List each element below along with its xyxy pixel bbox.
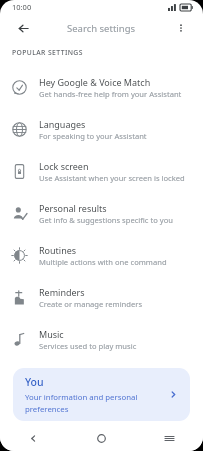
staticText: Search settings — [67, 22, 136, 35]
staticText: Routines — [39, 244, 77, 256]
staticText: Multiple actions with one command — [39, 257, 167, 267]
staticText: Use Assistant when your screen is locked — [39, 173, 185, 183]
staticText: Services used to play music — [39, 341, 137, 351]
staticText: You — [25, 375, 44, 389]
staticText: Create or manage reminders — [39, 299, 143, 309]
staticText: Get hands-free help from your Assistant — [39, 89, 182, 99]
staticText: Music — [39, 328, 64, 340]
button[interactable]: Back — [10, 15, 36, 41]
button[interactable]: Personal results — [0, 192, 203, 234]
button[interactable]: Music — [0, 318, 203, 360]
staticText: Languages — [39, 118, 86, 130]
staticText: Get info & suggestions specific to you — [39, 215, 173, 225]
staticText: Hey Google & Voice Match — [39, 76, 151, 88]
button[interactable]: Home — [67, 425, 135, 451]
button[interactable]: You — [13, 368, 190, 421]
button[interactable]: More options — [169, 16, 193, 40]
staticText: POPULAR SETTINGS — [12, 48, 83, 57]
button[interactable]: Back — [0, 425, 67, 451]
staticText: Reminders — [39, 286, 85, 298]
button[interactable]: Hey Google & Voice Match — [0, 66, 203, 108]
staticText: 10:00 — [12, 2, 32, 12]
button[interactable]: Reminders — [0, 276, 203, 318]
staticText: Personal results — [39, 202, 107, 214]
button[interactable]: Recent apps — [135, 425, 203, 451]
staticText: Your information and personal — [25, 392, 138, 403]
button[interactable]: Languages — [0, 108, 203, 150]
staticText: Lock screen — [39, 160, 89, 172]
button[interactable]: Routines — [0, 234, 203, 276]
staticText: For speaking to your Assistant — [39, 131, 147, 141]
staticText: preferences — [25, 404, 69, 415]
button[interactable]: Lock screen — [0, 150, 203, 192]
